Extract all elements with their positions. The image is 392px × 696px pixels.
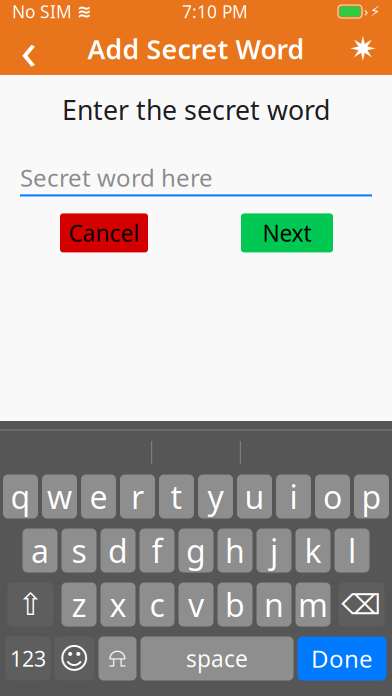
staticText: ⌫ [341,589,381,620]
staticText: x [109,583,126,626]
staticText: h [225,529,245,572]
staticText: Enter the secret word [62,92,330,127]
button[interactable]: Emoji [54,636,94,680]
button[interactable]: u [237,474,272,518]
staticText: ✷ [349,30,377,68]
button[interactable]: space [140,636,293,680]
button[interactable]: l [334,528,369,572]
staticText: z [71,583,86,626]
button[interactable]: e [81,474,116,518]
button[interactable]: Settings [340,23,386,75]
staticText: Done [311,643,373,674]
staticText: No SIM [12,0,72,23]
staticText: ⇧ [17,587,43,622]
button[interactable]: Back [6,23,52,75]
staticText: f [151,529,162,572]
button[interactable]: b [217,582,252,626]
staticText: ⍾ [108,645,126,671]
staticText: v [188,583,204,626]
button[interactable]: j [256,528,291,572]
staticText: w [47,475,72,518]
button[interactable]: Numbers [5,636,50,680]
button[interactable]: q [3,474,38,518]
staticText: Cancel [68,218,139,248]
button[interactable]: f [139,528,174,572]
staticText: s [71,529,86,572]
button[interactable]: i [276,474,311,518]
staticText: y [207,475,223,518]
button[interactable]: z [61,582,96,626]
staticText: q [10,475,30,518]
staticText: i [289,475,297,518]
button[interactable]: Cancel [60,213,148,252]
button[interactable]: g [178,528,213,572]
staticText: r [131,475,144,518]
button[interactable]: v [178,582,213,626]
staticText: b [225,583,245,626]
staticText: Secret word here [20,161,213,193]
button[interactable]: k [295,528,330,572]
staticText: Add Secret Word [87,31,304,67]
button[interactable]: x [100,582,135,626]
button[interactable]: m [295,582,330,626]
staticText: 7:10 PM [182,0,248,23]
button[interactable]: n [256,582,291,626]
button[interactable]: t [159,474,194,518]
button[interactable]: Delete [338,582,384,626]
staticText: k [304,529,321,572]
button[interactable]: Dictation [98,636,136,680]
staticText: ☺ [59,642,90,675]
button[interactable]: c [139,582,174,626]
staticText: space [186,643,248,673]
button[interactable]: Done [297,636,386,680]
staticText: n [264,583,284,626]
staticText: o [323,475,342,518]
button[interactable]: r [120,474,155,518]
staticText: d [108,529,128,572]
staticText: c [149,583,164,626]
staticText: › [364,3,368,19]
staticText: 123 [10,644,46,673]
button[interactable]: a [22,528,57,572]
staticText: a [31,529,49,572]
button[interactable]: w [42,474,77,518]
staticText: j [270,529,278,572]
staticText: ⚡︎ [370,3,380,20]
staticText: t [170,475,182,518]
button[interactable]: h [217,528,252,572]
button[interactable]: p [354,474,389,518]
button[interactable]: Next [241,213,333,252]
staticText: e [89,475,107,518]
staticText: m [298,583,328,626]
staticText: g [186,529,206,572]
staticText: Next [262,218,311,248]
button[interactable]: s [61,528,96,572]
button[interactable]: d [100,528,135,572]
staticText: p [361,475,381,518]
staticText: u [244,475,264,518]
staticText: ‹ [20,14,37,84]
button[interactable]: Shift [7,582,53,626]
button[interactable]: o [315,474,350,518]
staticText: ≋ [77,2,92,21]
button[interactable]: y [198,474,233,518]
staticText: l [348,529,356,572]
